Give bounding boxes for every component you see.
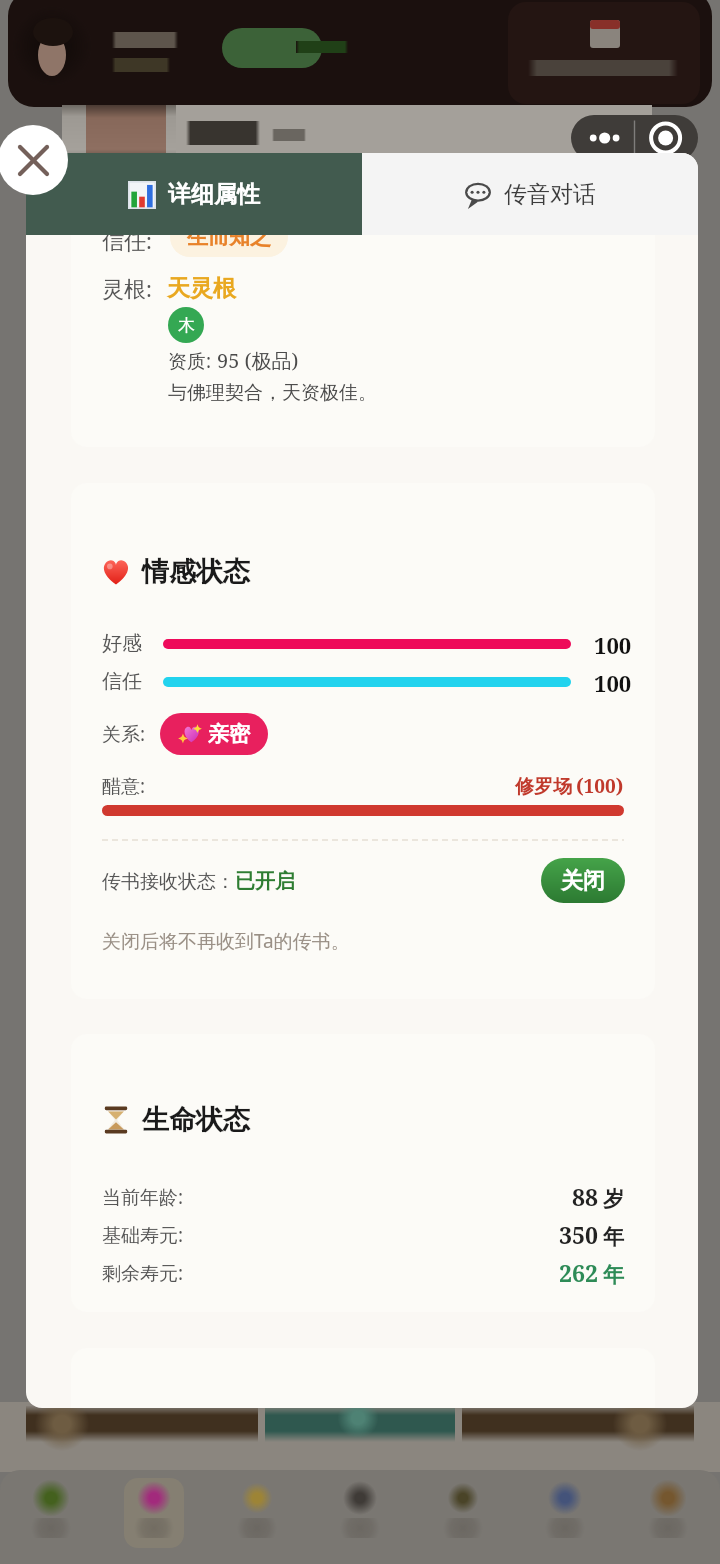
staticText: 与佛理契合，天资极佳。 <box>168 381 377 405</box>
staticText: 年 <box>603 1262 624 1288</box>
staticText: 亲密 <box>208 721 250 747</box>
staticText: 年 <box>603 1224 624 1250</box>
button[interactable]: 详细属性 <box>26 153 362 235</box>
staticText: 信任: <box>102 225 152 255</box>
staticText: 岁 <box>603 1186 624 1212</box>
button[interactable]: 关闭 <box>541 858 625 903</box>
staticText: 天灵根 <box>167 274 236 303</box>
button[interactable]: 导航 <box>0 1470 102 1564</box>
button[interactable]: 导航 <box>102 1470 205 1564</box>
staticText: 传书接收状态： <box>102 870 235 894</box>
staticText: 基础寿元: <box>102 1222 184 1248</box>
staticText: 木 <box>178 315 195 336</box>
button[interactable]: 传音对话 <box>362 153 698 235</box>
staticText: 好感 <box>102 631 142 656</box>
staticText: 关闭后将不再收到Ta的传书。 <box>102 928 350 954</box>
staticText: 传音对话 <box>504 180 596 209</box>
button[interactable]: 关闭 <box>0 125 68 195</box>
button[interactable]: 导航 <box>514 1470 617 1564</box>
staticText: 关闭 <box>561 867 605 895</box>
staticText: 350 <box>559 1219 598 1250</box>
staticText: 88 <box>572 1181 598 1212</box>
staticText: 详细属性 <box>168 180 260 209</box>
button[interactable]: 导航 <box>308 1470 411 1564</box>
button[interactable]: 更多 <box>571 115 698 161</box>
staticText: 生命状态 <box>142 1103 250 1137</box>
staticText: 信任 <box>102 669 142 694</box>
button[interactable]: 导航 <box>205 1470 308 1564</box>
staticText: 100 <box>594 668 632 698</box>
staticText: 95 (极品) <box>217 347 299 374</box>
staticText: (100) <box>576 773 624 799</box>
staticText: 关系: <box>102 721 146 747</box>
staticText: 修罗场 <box>515 775 572 799</box>
staticText: 资质: <box>168 348 212 374</box>
button[interactable]: 导航 <box>411 1470 514 1564</box>
staticText: 生而知之 <box>187 224 271 250</box>
button[interactable]: 导航 <box>617 1470 720 1564</box>
staticText: 剩余寿元: <box>102 1260 184 1286</box>
staticText: 100 <box>594 630 632 660</box>
staticText: 醋意: <box>102 773 146 799</box>
staticText: 灵根: <box>102 273 152 303</box>
staticText: 当前年龄: <box>102 1184 184 1210</box>
staticText: 情感状态 <box>142 555 250 589</box>
staticText: 已开启 <box>235 869 295 894</box>
staticText: 262 <box>559 1257 598 1288</box>
button[interactable]: 亲密 <box>160 713 268 755</box>
